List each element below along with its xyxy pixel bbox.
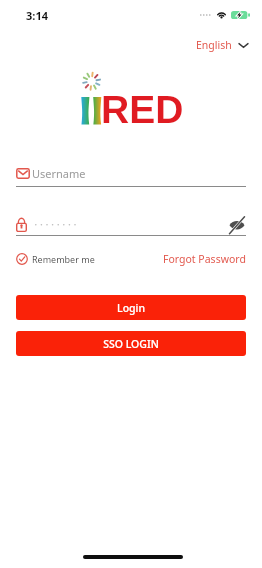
staticText: Username: [32, 166, 86, 181]
staticText: SSO LOGIN: [103, 337, 159, 351]
staticText: Login: [117, 301, 145, 315]
staticText: English: [196, 38, 232, 52]
button[interactable]: SSO LOGIN: [16, 331, 246, 356]
staticText: RED: [101, 88, 184, 132]
staticText: Remember me: [32, 253, 95, 265]
button[interactable]: Forgot Password: [163, 252, 246, 266]
staticText: 3:14: [26, 8, 48, 23]
button[interactable]: Login: [16, 295, 246, 320]
button[interactable]: English: [192, 34, 252, 56]
button[interactable]: Remember me: [16, 253, 95, 265]
button[interactable]: Show password: [228, 214, 246, 228]
